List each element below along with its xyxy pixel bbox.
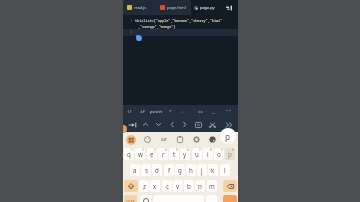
button[interactable]: GIF	[159, 136, 168, 143]
button[interactable]: s	[141, 164, 151, 176]
button[interactable]: d	[152, 164, 162, 176]
button[interactable]: ""	[226, 105, 232, 118]
staticText: m	[209, 182, 215, 190]
button[interactable]: :	[181, 105, 184, 118]
staticText: f	[168, 166, 171, 174]
staticText: 5	[176, 148, 178, 152]
button[interactable]: n	[195, 180, 205, 192]
button[interactable]: read.js	[127, 0, 147, 15]
staticText: 0	[232, 148, 234, 152]
button[interactable]: ==	[198, 105, 204, 118]
button[interactable]: page.py	[194, 0, 215, 15]
staticText: q	[127, 150, 131, 158]
button[interactable]: .	[206, 195, 217, 202]
staticText: s	[145, 166, 148, 174]
staticText: o	[217, 150, 221, 158]
staticText: l	[224, 166, 226, 174]
button[interactable]	[155, 121, 162, 128]
button[interactable]	[177, 136, 183, 143]
button[interactable]: z	[139, 180, 149, 192]
button[interactable]: v	[173, 180, 183, 192]
staticText: j	[201, 166, 203, 174]
button[interactable]: *	[169, 105, 172, 118]
staticText: thislist=["apple","banana","cherry","kiw…	[135, 18, 223, 23]
staticText: 2	[142, 148, 144, 152]
button[interactable]	[209, 122, 216, 128]
button[interactable]: _	[212, 105, 215, 118]
button[interactable]: l	[220, 164, 230, 176]
button[interactable]: ()	[127, 105, 133, 118]
staticText: p	[225, 131, 231, 142]
button[interactable]: k	[208, 164, 218, 176]
staticText: v	[176, 182, 180, 190]
button[interactable]: q	[124, 148, 134, 160]
button[interactable]: r	[158, 148, 168, 160]
button[interactable]: print	[150, 105, 163, 118]
staticText: t	[173, 150, 176, 158]
staticText: 1	[131, 148, 133, 152]
button[interactable]: ?123	[124, 195, 137, 202]
staticText: page.py	[200, 5, 215, 10]
staticText: z	[143, 182, 146, 190]
button[interactable]: w	[135, 148, 145, 160]
button[interactable]	[140, 195, 151, 202]
button[interactable]: b	[184, 180, 194, 192]
staticText: *	[169, 109, 172, 115]
button[interactable]	[209, 136, 216, 143]
staticText: ==	[198, 109, 204, 115]
button[interactable]: x	[150, 180, 160, 192]
staticText: page.html	[167, 5, 186, 10]
button[interactable]: u	[192, 148, 202, 160]
staticText: GIF	[161, 137, 167, 142]
button[interactable]: f	[164, 164, 174, 176]
button[interactable]: c	[162, 180, 172, 192]
staticText: k	[211, 166, 215, 174]
staticText: x	[153, 182, 157, 190]
button[interactable]: j	[197, 164, 207, 176]
button[interactable]: y	[180, 148, 190, 160]
button[interactable]: g	[175, 164, 185, 176]
button[interactable]	[144, 136, 151, 143]
button[interactable]	[128, 122, 137, 128]
staticText: ,"orange","mango"]	[138, 24, 176, 29]
staticText: _	[212, 109, 215, 115]
button[interactable]	[142, 121, 149, 128]
staticText: 6	[187, 148, 189, 152]
button[interactable]: a	[130, 164, 140, 176]
button[interactable]: p	[225, 148, 235, 160]
button[interactable]	[223, 180, 237, 192]
staticText: c	[166, 182, 169, 190]
staticText: y	[183, 150, 187, 158]
button[interactable]	[223, 195, 237, 202]
staticText: 4	[165, 148, 167, 152]
staticText: r	[162, 150, 165, 158]
button[interactable]	[191, 0, 238, 15]
button[interactable]: h	[186, 164, 196, 176]
staticText: ""	[226, 109, 232, 115]
button[interactable]	[181, 121, 188, 128]
button[interactable]: m	[207, 180, 217, 192]
staticText: :	[181, 109, 184, 115]
staticText: 3	[154, 148, 156, 152]
button[interactable]	[193, 136, 200, 143]
button[interactable]	[195, 122, 202, 128]
button[interactable]: page.html	[160, 0, 186, 15]
button[interactable]: i	[203, 148, 213, 160]
staticText: read.js	[134, 5, 147, 10]
staticText: n	[198, 182, 202, 190]
button[interactable]: t	[169, 148, 179, 160]
button[interactable]: if	[140, 105, 146, 118]
staticText: 1	[130, 18, 133, 24]
staticText: print	[150, 109, 163, 115]
staticText: i	[207, 150, 209, 158]
button[interactable]: e	[147, 148, 157, 160]
staticText: e	[150, 150, 154, 158]
button[interactable]	[169, 121, 176, 128]
button[interactable]	[124, 180, 138, 192]
staticText: w	[138, 150, 143, 158]
button[interactable]	[225, 122, 233, 128]
staticText: d	[155, 166, 159, 174]
button[interactable]	[126, 135, 136, 145]
button[interactable]: o	[214, 148, 224, 160]
